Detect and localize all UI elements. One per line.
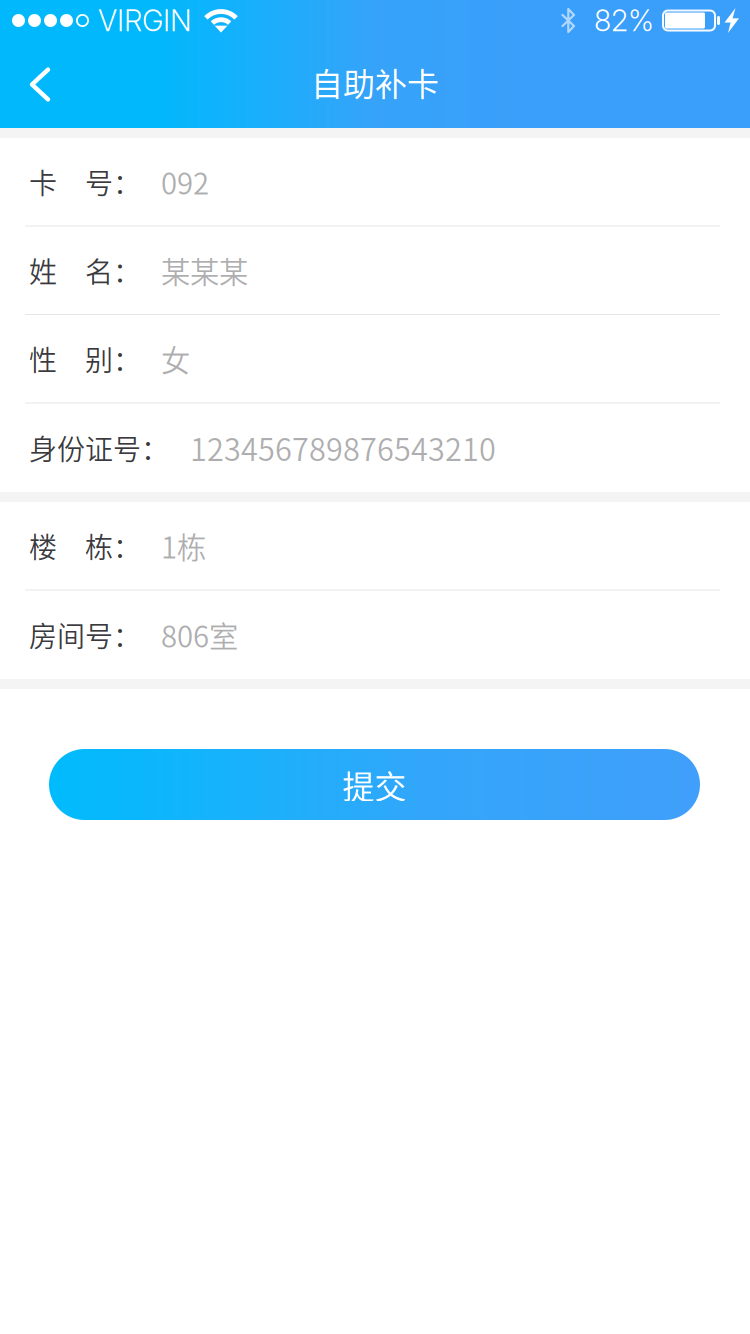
staticText: 806室 xyxy=(161,613,238,656)
button[interactable]: 提交 xyxy=(49,749,700,820)
staticText: 1栋 xyxy=(161,524,206,567)
staticText: 卡 号： xyxy=(29,161,141,202)
staticText: 自助补卡 xyxy=(311,59,439,105)
staticText: 123456789876543210 xyxy=(190,425,496,470)
staticText: 092 xyxy=(161,160,209,203)
button[interactable]: Back xyxy=(0,41,77,128)
staticText: 楼 栋： xyxy=(29,525,141,566)
staticText: 女 xyxy=(161,337,190,380)
staticText: 82% xyxy=(594,3,654,38)
staticText: 某某某 xyxy=(161,249,248,291)
staticText: 身份证号： xyxy=(29,427,169,468)
staticText: VIRGIN xyxy=(98,3,192,38)
staticText: 姓 名： xyxy=(29,250,141,290)
staticText: 性 别： xyxy=(29,338,141,379)
staticText: 提交 xyxy=(342,761,406,808)
staticText: 房间号： xyxy=(29,614,141,655)
